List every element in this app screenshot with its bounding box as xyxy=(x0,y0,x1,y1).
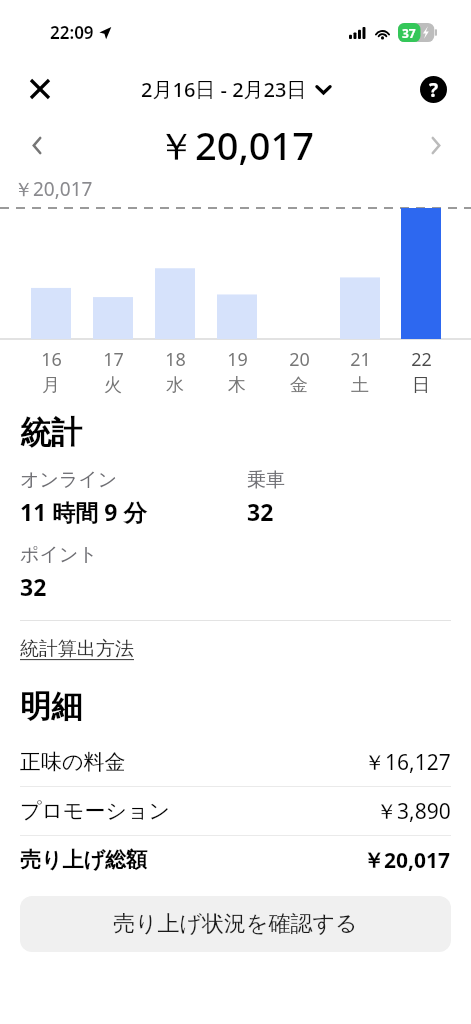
staticText: 木 xyxy=(228,374,246,397)
staticText: 月 xyxy=(42,374,60,397)
staticText: 32 xyxy=(247,496,274,527)
staticText: 水 xyxy=(166,374,184,397)
staticText: 売り上げ総額 xyxy=(20,847,147,873)
staticText: 売り上げ状況を確認する xyxy=(113,910,358,938)
staticText: ￥3,890 xyxy=(376,797,451,826)
staticText: ? xyxy=(429,77,439,103)
staticText: 22:09 xyxy=(50,21,94,44)
staticText: ポイント xyxy=(20,543,98,567)
staticText: 18 xyxy=(165,347,186,372)
staticText: 17 xyxy=(103,347,124,372)
staticText: 明細 xyxy=(20,687,82,726)
button[interactable]: 2月16日 - 2月23日 xyxy=(141,76,331,103)
staticText: プロモーション xyxy=(20,798,170,824)
staticText: ￥20,017 xyxy=(157,119,315,171)
button[interactable]: 統計算出方法 xyxy=(20,637,134,661)
staticText: 21 xyxy=(350,347,371,372)
button[interactable]: Previous week xyxy=(20,128,54,162)
staticText: 2月16日 - 2月23日 xyxy=(141,76,307,103)
staticText: 乗車 xyxy=(247,468,285,492)
staticText: ￥20,017 xyxy=(14,176,93,202)
staticText: 37 xyxy=(402,25,416,41)
staticText: 統計 xyxy=(20,413,82,452)
staticText: 土 xyxy=(351,374,369,397)
staticText: 16 xyxy=(41,347,62,372)
staticText: 22 xyxy=(411,347,432,372)
staticText: 32 xyxy=(20,571,47,602)
button[interactable]: Help xyxy=(411,67,455,111)
button[interactable]: Close xyxy=(18,67,62,111)
button[interactable]: Next week xyxy=(419,128,453,162)
staticText: 火 xyxy=(104,374,122,397)
staticText: 19 xyxy=(227,347,248,372)
staticText: 金 xyxy=(290,374,308,397)
button[interactable]: 売り上げ状況を確認する xyxy=(20,896,451,952)
staticText: 正味の料金 xyxy=(20,749,126,775)
staticText: 11 時間 9 分 xyxy=(20,496,147,527)
staticText: ￥16,127 xyxy=(364,748,451,777)
staticText: オンライン xyxy=(20,468,118,492)
staticText: 20 xyxy=(289,347,310,372)
staticText: ￥20,017 xyxy=(363,846,451,875)
staticText: 日 xyxy=(412,374,430,397)
staticText: 統計算出方法 xyxy=(20,637,134,661)
